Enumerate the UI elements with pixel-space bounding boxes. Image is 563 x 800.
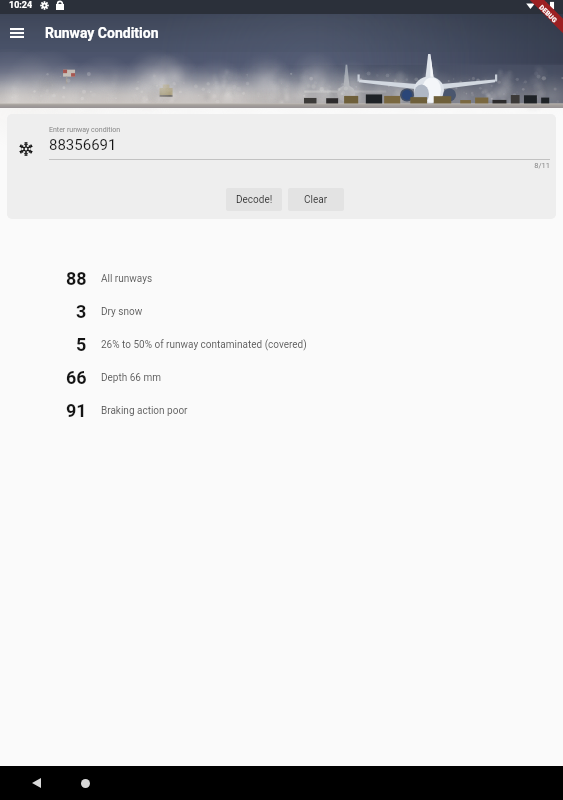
button[interactable]: 91 <box>0 394 563 427</box>
staticText: Runway Condition <box>45 25 159 41</box>
button[interactable]: Clear <box>288 188 344 211</box>
staticText: 26% to 50% of runway contaminated (cover… <box>101 339 307 351</box>
staticText: Depth 66 mm <box>101 372 161 384</box>
staticText: Dry snow <box>101 306 143 318</box>
staticText: All runways <box>101 273 153 285</box>
button[interactable]: Home <box>70 768 100 798</box>
staticText: 3 <box>76 301 87 322</box>
staticText: 88 <box>66 268 87 289</box>
staticText: 10:24 <box>9 0 33 11</box>
button[interactable]: Open navigation menu <box>3 19 31 47</box>
staticText: Clear <box>304 194 328 206</box>
staticText: 5 <box>76 334 87 355</box>
staticText: 88356691 <box>49 136 117 154</box>
button[interactable]: Back <box>21 768 51 798</box>
button[interactable]: 3 <box>0 295 563 328</box>
button[interactable]: 5 <box>0 328 563 361</box>
button[interactable]: 66 <box>0 361 563 394</box>
staticText: Braking action poor <box>101 405 188 417</box>
button[interactable]: 88 <box>0 262 563 295</box>
staticText: Enter runway condition <box>49 126 121 134</box>
staticText: 66 <box>66 367 87 388</box>
staticText: 91 <box>66 400 87 421</box>
staticText: 8/11 <box>49 161 550 170</box>
staticText: DEBUG <box>537 3 559 25</box>
staticText: Decode! <box>236 194 273 206</box>
button[interactable]: Decode! <box>226 188 282 211</box>
